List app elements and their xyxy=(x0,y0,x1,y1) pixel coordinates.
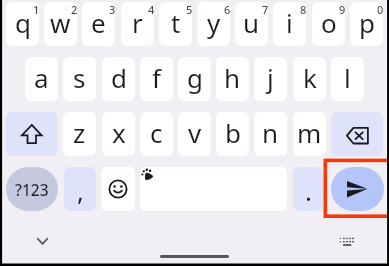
button[interactable]: Hide keyboard xyxy=(30,231,55,253)
button[interactable]: Send xyxy=(331,167,384,211)
staticText: n xyxy=(262,115,279,150)
staticText: l xyxy=(344,60,351,95)
staticText: k xyxy=(303,60,317,95)
button[interactable]: Backspace xyxy=(331,112,383,156)
staticText: d xyxy=(111,60,127,95)
staticText: x xyxy=(112,115,126,150)
staticText: q xyxy=(15,5,31,40)
button[interactable]: 5 xyxy=(159,2,192,46)
button[interactable]: n xyxy=(254,112,287,156)
staticText: s xyxy=(73,60,86,95)
staticText: a xyxy=(34,60,49,95)
staticText: 3 xyxy=(109,2,115,17)
staticText: t xyxy=(171,5,181,40)
button[interactable]: 1 xyxy=(6,2,39,46)
button[interactable]: f xyxy=(140,57,173,101)
staticText: ?123 xyxy=(15,179,49,200)
staticText: z xyxy=(73,115,86,150)
staticText: 8 xyxy=(300,2,306,17)
button[interactable]: d xyxy=(102,57,135,101)
button[interactable]: l xyxy=(331,57,364,101)
button[interactable]: , xyxy=(64,167,96,211)
staticText: c xyxy=(150,115,163,150)
staticText: y xyxy=(207,5,221,40)
staticText: 9 xyxy=(339,2,345,17)
button[interactable]: k xyxy=(293,57,326,101)
staticText: j xyxy=(267,60,274,95)
staticText: m xyxy=(297,115,322,150)
staticText: f xyxy=(152,60,161,95)
button[interactable]: 8 xyxy=(273,2,306,46)
button[interactable]: z xyxy=(63,112,96,156)
staticText: v xyxy=(188,115,202,150)
button[interactable]: s xyxy=(63,57,96,101)
button[interactable]: 6 xyxy=(197,2,230,46)
staticText: 0 xyxy=(377,2,383,17)
button[interactable]: v xyxy=(178,112,211,156)
staticText: e xyxy=(91,5,106,40)
staticText: 7 xyxy=(262,2,268,17)
button[interactable]: ?123 xyxy=(6,167,58,211)
button[interactable]: 7 xyxy=(235,2,268,46)
staticText: 5 xyxy=(186,2,192,17)
button[interactable]: a xyxy=(25,57,58,101)
button[interactable]: g xyxy=(178,57,211,101)
staticText: b xyxy=(225,115,241,150)
staticText: h xyxy=(224,60,241,95)
button[interactable]: 4 xyxy=(121,2,154,46)
button[interactable]: 9 xyxy=(312,2,345,46)
button[interactable]: 2 xyxy=(44,2,77,46)
staticText: u xyxy=(243,5,260,40)
staticText: i xyxy=(286,5,293,40)
staticText: w xyxy=(50,5,71,40)
staticText: . xyxy=(305,173,312,208)
staticText: 2 xyxy=(71,2,77,17)
staticText: 4 xyxy=(148,2,154,17)
button[interactable]: 3 xyxy=(82,2,115,46)
button[interactable]: Shift xyxy=(6,112,58,156)
button[interactable]: c xyxy=(140,112,173,156)
button[interactable]: Emoji xyxy=(101,167,135,211)
staticText: p xyxy=(359,5,375,40)
button[interactable]: 0 xyxy=(350,2,383,46)
button[interactable]: . xyxy=(293,167,323,211)
staticText: , xyxy=(77,173,84,208)
staticText: 1 xyxy=(33,2,39,17)
staticText: o xyxy=(321,5,337,40)
button[interactable]: Space xyxy=(140,167,287,211)
button[interactable]: Change keyboard xyxy=(336,232,358,250)
staticText: g xyxy=(187,60,203,95)
button[interactable]: j xyxy=(254,57,287,101)
button[interactable]: m xyxy=(293,112,326,156)
staticText: r xyxy=(132,5,143,40)
staticText: 6 xyxy=(224,2,230,17)
button[interactable]: b xyxy=(216,112,249,156)
button[interactable]: x xyxy=(102,112,135,156)
button[interactable]: h xyxy=(216,57,249,101)
